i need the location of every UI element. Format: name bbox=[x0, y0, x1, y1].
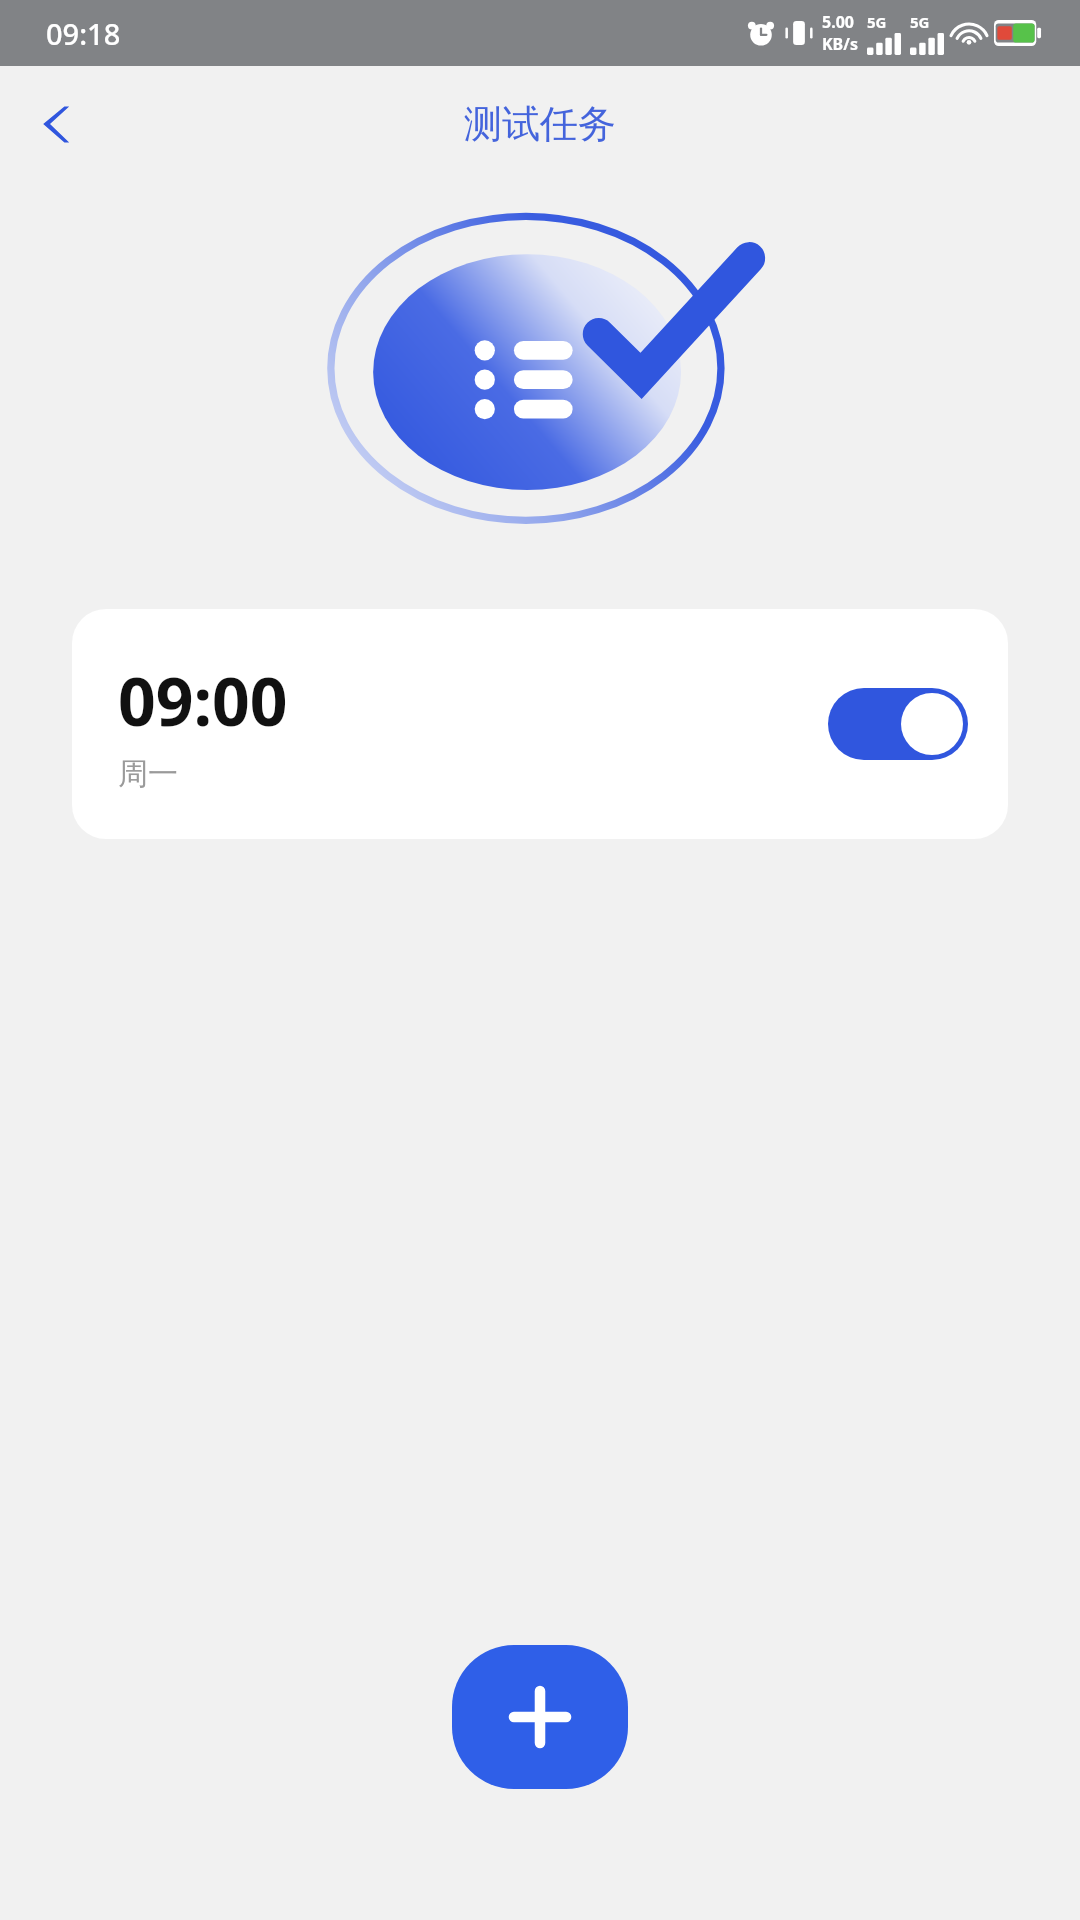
staticText: 5G bbox=[910, 12, 930, 32]
staticText: KB/s bbox=[822, 33, 858, 55]
button[interactable]: Back bbox=[18, 84, 98, 164]
button[interactable]: 09:00 bbox=[72, 609, 1008, 839]
button[interactable]: Add bbox=[452, 1645, 628, 1789]
staticText: 09:00 bbox=[118, 655, 288, 745]
staticText: 周一 bbox=[118, 755, 178, 793]
staticText: 5.00 bbox=[822, 11, 854, 33]
button[interactable]: Alarm enabled toggle bbox=[828, 688, 968, 760]
staticText: 5G bbox=[867, 12, 887, 32]
staticText: 09:18 bbox=[46, 14, 121, 53]
staticText: 测试任务 bbox=[464, 100, 616, 148]
